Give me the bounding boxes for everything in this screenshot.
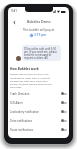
staticText: Bubbles Demo — [27, 19, 51, 24]
button[interactable]: Pause notifications — [10, 125, 67, 134]
staticText: Crash Detection — [10, 92, 61, 96]
button[interactable]: Drive notifications — [10, 116, 67, 125]
button[interactable]: Crash Detection — [10, 89, 67, 98]
staticText: Pause notifications — [10, 128, 61, 132]
staticText: I'll be at the cafe until 5:30 pm. If yo… — [24, 47, 59, 59]
button[interactable]: SOS Alarm — [10, 98, 67, 107]
button[interactable]: Low battery notification — [10, 107, 67, 116]
staticText: How Bubbles work — [10, 67, 39, 71]
staticText: Low battery notification — [10, 110, 61, 114]
staticText: Drive notifications — [10, 119, 61, 123]
staticText: 3:19 pm — [34, 33, 47, 37]
button[interactable]: Back — [10, 18, 18, 26]
staticText: This bubble will pop at — [8, 28, 69, 32]
staticText: SOS Alarm — [10, 101, 61, 105]
staticText: 9:41 — [11, 9, 17, 13]
staticText: Bubbles give you quick access to your co… — [10, 73, 54, 88]
